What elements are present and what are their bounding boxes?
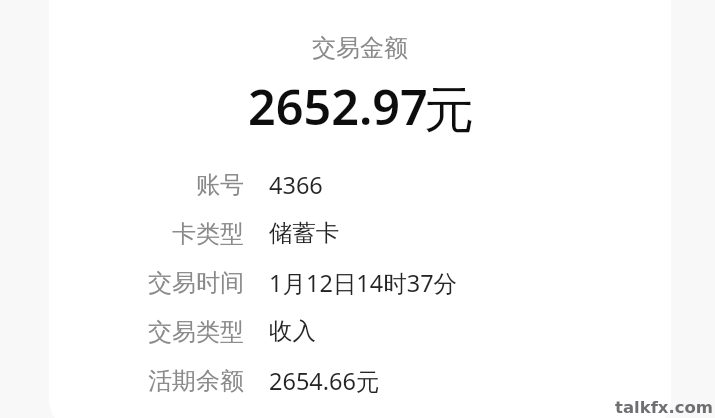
- staticText: 交易金额: [312, 33, 408, 63]
- staticText: 收入: [269, 316, 316, 346]
- staticText: 2652.97: [248, 73, 428, 139]
- button[interactable]: 活期余额: [0, 366, 715, 406]
- staticText: 活期余额: [148, 366, 244, 396]
- staticText: 账号: [196, 170, 244, 200]
- button[interactable]: 交易类型: [0, 317, 715, 357]
- button[interactable]: talkfx.com: [615, 398, 714, 417]
- staticText: 2654.66元: [269, 365, 380, 397]
- staticText: 储蓄卡: [269, 218, 340, 248]
- staticText: 交易时间: [148, 268, 244, 298]
- button[interactable]: 交易时间: [0, 268, 715, 308]
- button[interactable]: 交易金额 2652.97 元: [240, 76, 480, 134]
- staticText: 元: [424, 79, 474, 142]
- staticText: talkfx.com: [615, 398, 714, 417]
- button[interactable]: 卡类型: [0, 219, 715, 259]
- staticText: 4366: [269, 169, 323, 201]
- staticText: 卡类型: [172, 219, 244, 249]
- button[interactable]: 账号: [0, 170, 715, 210]
- staticText: 1月12日14时37分: [269, 267, 458, 299]
- staticText: 交易类型: [148, 317, 244, 347]
